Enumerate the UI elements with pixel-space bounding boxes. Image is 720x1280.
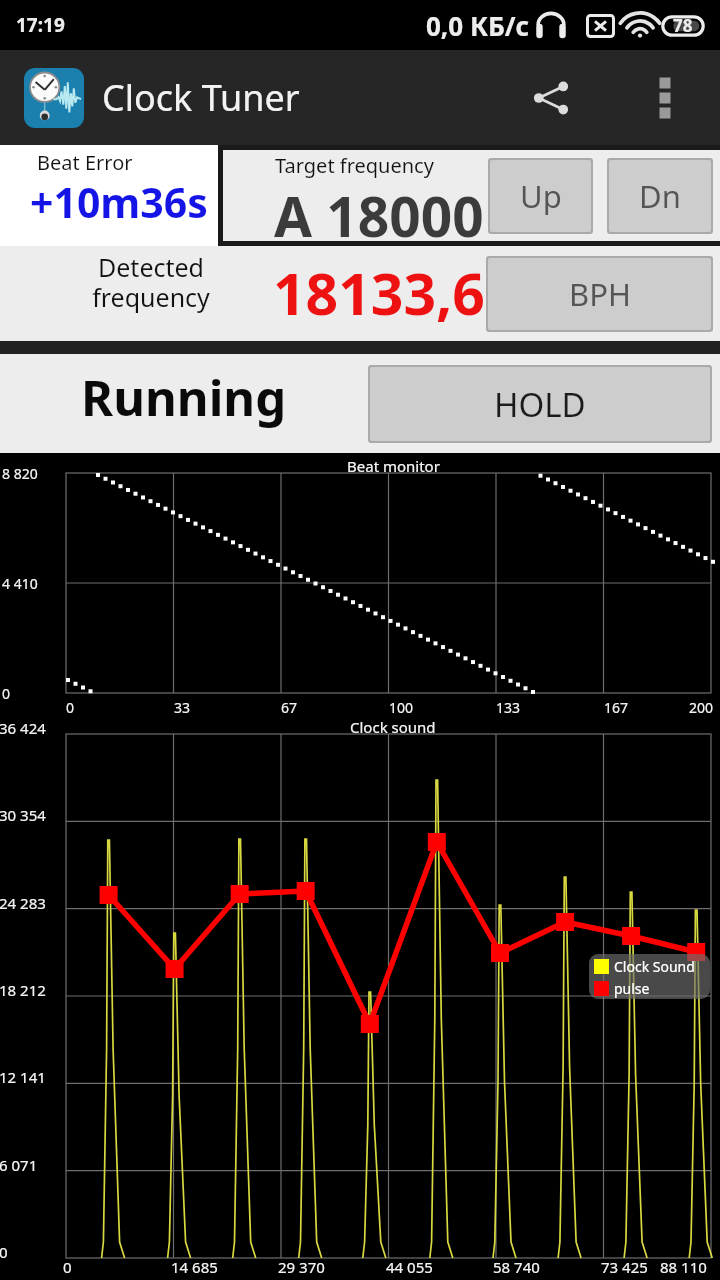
staticText: 0: [0, 1242, 8, 1262]
staticText: 58 740: [493, 1257, 540, 1277]
staticText: 17:19: [16, 12, 65, 38]
staticText: 29 370: [278, 1257, 325, 1277]
staticText: Clock Tuner: [102, 73, 300, 122]
staticText: 44 055: [386, 1257, 433, 1277]
staticText: 36 424: [0, 718, 46, 738]
staticText: Clock Sound: [614, 957, 695, 976]
staticText: HOLD: [494, 382, 586, 427]
staticText: Beat monitor: [347, 456, 440, 476]
staticText: 88 110: [660, 1257, 707, 1277]
staticText: Up: [520, 175, 562, 217]
staticText: Dn: [639, 175, 681, 217]
staticText: 100: [389, 698, 414, 717]
staticText: 0: [63, 1257, 72, 1277]
staticText: 33: [174, 698, 191, 717]
staticText: 0,0 КБ/с: [426, 8, 530, 43]
staticText: A 18000: [274, 178, 484, 253]
staticText: Running: [81, 364, 287, 431]
button[interactable]: Dn: [609, 160, 711, 232]
staticText: 30 354: [0, 805, 46, 825]
staticText: 73 425: [601, 1257, 648, 1277]
staticText: 4 410: [2, 574, 38, 593]
staticText: Beat Error: [37, 149, 133, 176]
button[interactable]: Beat Error: [0, 145, 218, 246]
staticText: BPH: [569, 273, 631, 315]
button[interactable]: HOLD: [370, 367, 710, 441]
staticText: Detected frequency: [56, 250, 246, 314]
staticText: 200: [689, 698, 714, 717]
staticText: Clock sound: [350, 717, 436, 737]
staticText: Target frequency: [275, 152, 434, 179]
button[interactable]: Share: [484, 50, 618, 145]
button[interactable]: Target frequency: [223, 150, 720, 241]
staticText: 18 212: [0, 980, 46, 1000]
staticText: 0: [2, 684, 11, 703]
staticText: 24 283: [0, 893, 46, 913]
staticText: 0: [66, 698, 75, 717]
button[interactable]: Up: [490, 160, 591, 232]
staticText: 6 071: [0, 1155, 38, 1175]
staticText: 14 685: [171, 1257, 218, 1277]
button[interactable]: More options: [618, 50, 712, 145]
staticText: 12 141: [0, 1067, 46, 1087]
staticText: 8 820: [2, 464, 38, 483]
staticText: 67: [281, 698, 298, 717]
staticText: 78: [673, 14, 693, 37]
staticText: 18133,6: [273, 254, 485, 332]
button[interactable]: BPH: [488, 258, 711, 330]
staticText: 133: [496, 698, 521, 717]
staticText: +10m36s: [30, 174, 208, 230]
staticText: pulse: [614, 979, 650, 998]
staticText: 167: [604, 698, 629, 717]
